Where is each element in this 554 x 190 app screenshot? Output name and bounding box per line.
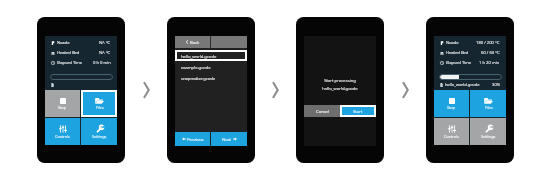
staticText: Stop	[58, 105, 67, 110]
staticText: Heated Bed	[446, 50, 469, 56]
staticText: Next	[222, 136, 232, 142]
staticText: snapmaker.gcode	[181, 75, 216, 81]
staticText: Heated Bed	[57, 50, 80, 56]
button[interactable]: Settings	[81, 118, 117, 145]
staticText: NA °C	[99, 50, 111, 56]
button[interactable]: snapmaker.gcode	[175, 72, 247, 83]
staticText: 0 h 0 min	[93, 60, 111, 66]
button[interactable]: Files	[470, 90, 506, 117]
staticText: Cancel	[316, 108, 329, 114]
button[interactable]: Start	[340, 105, 376, 117]
button[interactable]: Controls	[45, 118, 80, 145]
button[interactable]: Stop	[45, 90, 80, 117]
button[interactable]: Back	[175, 36, 210, 48]
button[interactable]: Next	[211, 132, 247, 146]
staticText: Settings	[92, 134, 107, 139]
staticText: Previous	[187, 136, 204, 142]
button[interactable]: Files	[81, 90, 117, 117]
staticText: Back	[190, 39, 200, 45]
staticText: Start processing	[304, 77, 376, 83]
staticText: hello_world.gcode	[304, 85, 376, 91]
staticText: Start	[353, 108, 363, 114]
staticText: Settings	[481, 134, 496, 139]
button[interactable]: Stop	[434, 90, 469, 117]
staticText: NA °C	[99, 40, 111, 46]
staticText: Files	[96, 105, 104, 110]
staticText: Controls	[55, 134, 70, 139]
button[interactable]: Cancel	[304, 105, 340, 117]
button[interactable]: Controls	[434, 118, 469, 145]
staticText: hello_world.gcode	[181, 53, 217, 59]
staticText: Nozzle	[446, 40, 459, 46]
staticText: Elapsed Time	[57, 60, 83, 66]
staticText: 180 / 200 °C	[476, 40, 500, 46]
staticText: 1 h 20 min	[479, 60, 500, 66]
staticText: 60 / 60 °C	[481, 50, 500, 56]
staticText: Controls	[444, 134, 459, 139]
button[interactable]: example.gcode	[175, 61, 247, 72]
button[interactable]: Previous	[175, 132, 210, 146]
button[interactable]: hello_world.gcode	[175, 50, 247, 61]
staticText: Elapsed Time	[446, 60, 472, 66]
staticText: Files	[485, 105, 493, 110]
staticText: 30%	[492, 82, 501, 87]
staticText: hello_world.gcode	[445, 82, 480, 87]
button[interactable]: Settings	[470, 118, 506, 145]
staticText: Nozzle	[57, 40, 70, 46]
staticText: example.gcode	[181, 64, 211, 70]
staticText: Stop	[447, 105, 456, 110]
